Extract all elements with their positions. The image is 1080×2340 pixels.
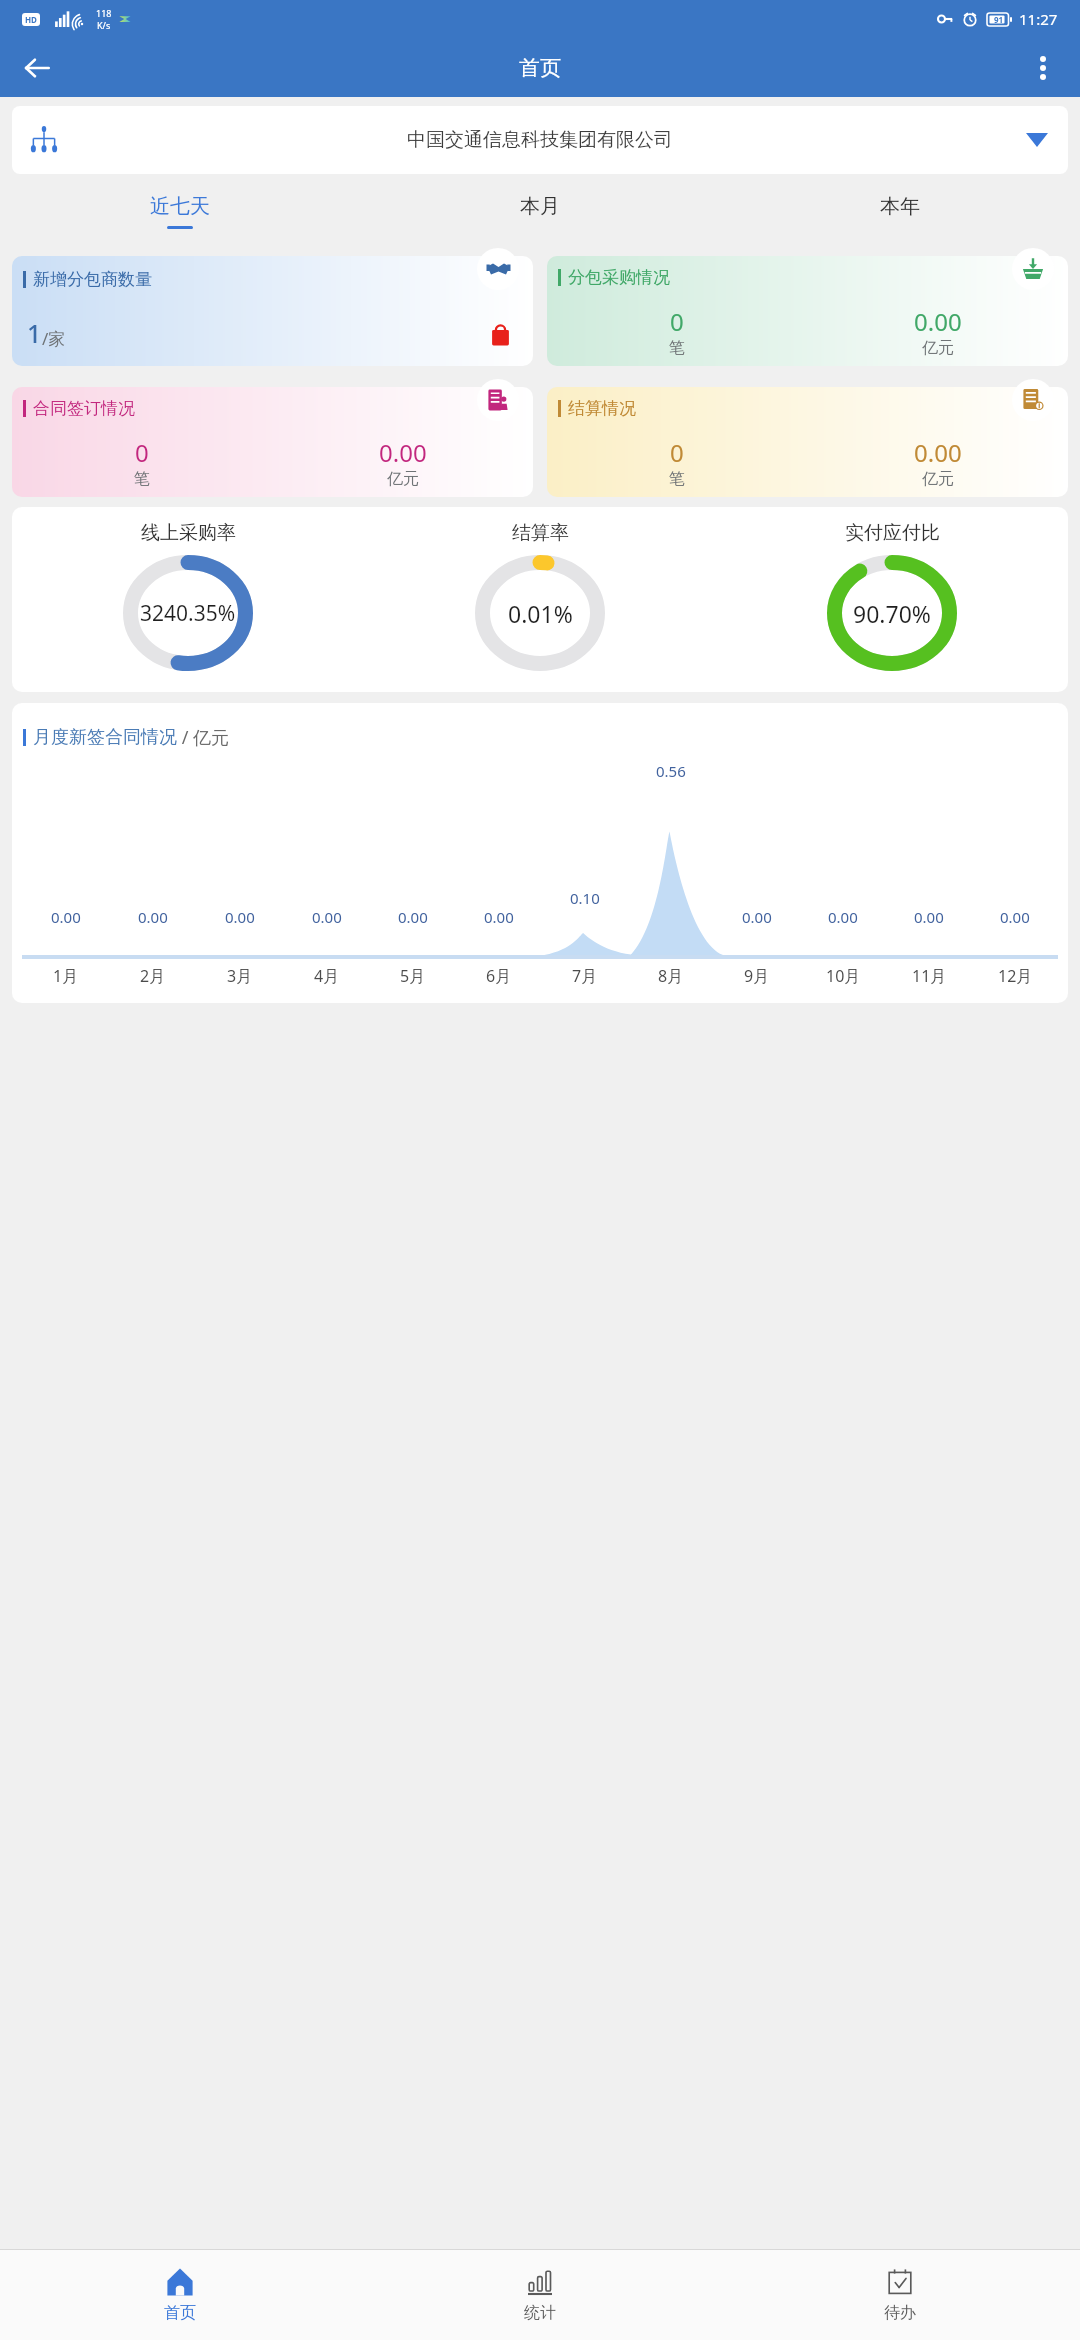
staticText: 11:27 [1019,9,1058,29]
button[interactable]: 实付应付比 [716,521,1068,692]
staticText: 0.01% [508,598,573,629]
staticText: 0.00 [225,907,255,927]
staticText: 7月 [572,965,598,987]
staticText: 新增分包商数量 [33,269,152,290]
button[interactable]: 新增分包商数量 [12,256,533,366]
button[interactable]: 中国交通信息科技集团有限公司 [12,106,1068,174]
button[interactable]: More options [1020,45,1066,91]
staticText: 0.00 [379,436,427,469]
staticText: 0.00 [742,907,772,927]
staticText: 0.00 [51,907,81,927]
staticText: 结算率 [512,521,569,545]
staticText: 12月 [998,965,1033,987]
staticText: 0 [135,436,149,469]
button[interactable]: 本年 [720,180,1080,242]
staticText: 待办 [884,2303,916,2323]
button[interactable]: 待办 [720,2250,1080,2340]
button[interactable]: 分包采购情况 [547,256,1068,366]
staticText: 亿元 [922,469,954,489]
staticText: 9月 [744,965,770,987]
staticText: 0.10 [570,888,600,908]
staticText: 笔 [134,469,150,489]
staticText: K/s [97,19,111,31]
button[interactable]: 统计 [360,2250,720,2340]
staticText: 实付应付比 [845,521,940,545]
staticText: 5月 [400,965,426,987]
staticText: 0.00 [828,907,858,927]
button[interactable]: 合同签订情况 [12,387,533,497]
staticText: 统计 [524,2303,556,2323]
staticText: /家 [42,327,66,350]
button[interactable]: 结算率 [364,521,716,692]
staticText: 合同签订情况 [33,398,135,419]
staticText: 90.70% [853,598,931,629]
button[interactable]: 结算情况 [547,387,1068,497]
staticText: 亿元 [387,469,419,489]
staticText: 月度新签合同情况 [33,726,177,749]
staticText: 0.00 [312,907,342,927]
button[interactable]: 近七天 [0,180,360,242]
staticText: 近七天 [150,194,210,219]
button[interactable]: Back [14,45,60,91]
staticText: 8月 [658,965,684,987]
staticText: 91 [994,14,1004,25]
staticText: 4月 [314,965,340,987]
staticText: 首页 [519,55,561,81]
staticText: 分包采购情况 [568,267,670,288]
staticText: 中国交通信息科技集团有限公司 [407,128,673,152]
staticText: 2月 [140,965,166,987]
staticText: 结算情况 [568,398,636,419]
staticText: 0.00 [398,907,428,927]
staticText: 10月 [826,965,861,987]
staticText: 6月 [486,965,512,987]
staticText: 本年 [880,194,920,219]
staticText: 亿元 [922,338,954,358]
staticText: 0 [670,436,684,469]
staticText: 0.00 [484,907,514,927]
staticText: 0.00 [914,305,962,338]
button[interactable]: 本月 [360,180,720,242]
staticText: 笔 [669,338,685,358]
staticText: 0.00 [914,907,944,927]
staticText: 3月 [227,965,253,987]
button[interactable]: 线上采购率 [12,521,364,692]
staticText: 3240.35% [140,599,236,628]
staticText: 本月 [520,194,560,219]
staticText: 0.00 [138,907,168,927]
staticText: 1月 [53,965,79,987]
staticText: 11月 [912,965,947,987]
staticText: 1 [27,316,42,350]
staticText: 0.00 [914,436,962,469]
button[interactable]: 首页 [0,2250,360,2340]
staticText: 0 [670,305,684,338]
staticText: 笔 [669,469,685,489]
staticText: 118 [96,7,112,19]
staticText: 0.00 [1000,907,1030,927]
staticText: / 亿元 [177,725,230,750]
staticText: 线上采购率 [141,521,236,545]
staticText: 首页 [164,2303,196,2323]
staticText: 0.56 [656,761,686,781]
staticText: HD [25,14,37,25]
